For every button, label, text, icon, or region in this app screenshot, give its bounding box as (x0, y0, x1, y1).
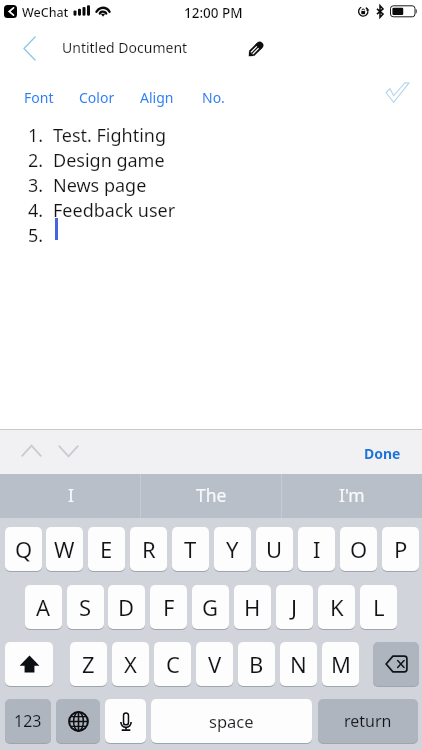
staticText: Q (15, 534, 33, 564)
staticText: WeChat (22, 4, 69, 21)
staticText: P (394, 534, 408, 564)
staticText: 1. (28, 123, 44, 148)
staticText: S (79, 592, 92, 622)
button[interactable]: Color (72, 82, 122, 113)
button[interactable]: Next field (53, 435, 83, 467)
staticText: O (350, 534, 368, 564)
button[interactable]: R (130, 527, 167, 571)
button[interactable]: F (150, 585, 187, 629)
staticText: I'm (339, 483, 365, 507)
staticText: N (290, 649, 307, 679)
staticText: Done (364, 444, 401, 463)
button[interactable]: Z (70, 642, 107, 686)
button[interactable]: A (25, 585, 62, 629)
staticText: Design game (53, 148, 165, 173)
staticText: F (163, 592, 175, 622)
button[interactable]: Align (133, 82, 181, 113)
staticText: The (196, 483, 227, 507)
staticText: I (68, 483, 74, 507)
button[interactable]: Backspace (373, 642, 419, 686)
staticText: Y (226, 534, 239, 564)
staticText: 5. (28, 223, 44, 248)
button[interactable]: space (151, 699, 312, 743)
staticText: U (266, 534, 283, 564)
staticText: 4. (28, 198, 44, 223)
staticText: V (208, 649, 222, 679)
staticText: Font (24, 88, 54, 107)
button[interactable]: Q (5, 527, 42, 571)
staticText: M (331, 649, 351, 679)
button[interactable]: T (172, 527, 209, 571)
button[interactable]: D (108, 585, 145, 629)
staticText: B (249, 649, 264, 679)
button[interactable]: I'm (281, 474, 422, 518)
staticText: return (344, 710, 392, 732)
staticText: L (373, 592, 385, 622)
staticText: A (36, 592, 51, 622)
button[interactable]: G (192, 585, 229, 629)
button[interactable]: U (256, 527, 293, 571)
button[interactable]: N (280, 642, 317, 686)
staticText: Feedback user (53, 198, 176, 223)
button[interactable]: Done (357, 438, 408, 469)
staticText: News page (53, 173, 147, 198)
staticText: 12:00 PM (184, 4, 243, 22)
staticText: W (54, 534, 75, 564)
staticText: G (202, 592, 219, 622)
staticText: No. (202, 88, 225, 107)
button[interactable]: M (322, 642, 359, 686)
button[interactable]: Done (382, 78, 413, 107)
staticText: Test. Fighting (53, 123, 167, 148)
button[interactable]: Edit (240, 32, 272, 64)
button[interactable]: W (46, 527, 83, 571)
button[interactable]: I (298, 527, 335, 571)
staticText: space (209, 710, 254, 732)
staticText: T (184, 534, 197, 564)
button[interactable]: Dictate (105, 699, 146, 743)
staticText: Align (140, 88, 174, 107)
button[interactable]: Y (214, 527, 251, 571)
button[interactable]: O (340, 527, 377, 571)
staticText: K (330, 592, 344, 622)
button[interactable]: E (88, 527, 125, 571)
button[interactable]: S (67, 585, 104, 629)
button[interactable]: Font (17, 82, 61, 113)
button[interactable]: J (276, 585, 313, 629)
staticText: 123 (14, 710, 42, 732)
button[interactable]: L (360, 585, 397, 629)
staticText: 3. (28, 173, 44, 198)
staticText: Color (79, 88, 115, 107)
staticText: X (124, 649, 137, 679)
button[interactable]: P (382, 527, 419, 571)
button[interactable]: K (318, 585, 355, 629)
button[interactable]: X (112, 642, 149, 686)
button[interactable]: No. (195, 82, 232, 113)
staticText: Untitled Document (62, 38, 188, 57)
button[interactable]: 123 (5, 699, 51, 743)
staticText: I (313, 534, 321, 564)
button[interactable]: Shift (5, 642, 53, 686)
staticText: R (142, 534, 156, 564)
staticText: Z (82, 649, 95, 679)
button[interactable]: The (141, 474, 282, 518)
button[interactable]: Switch keyboard (56, 699, 100, 743)
button[interactable]: C (154, 642, 191, 686)
button[interactable]: B (238, 642, 275, 686)
staticText: H (244, 592, 261, 622)
button[interactable]: Previous field (16, 435, 46, 467)
staticText: D (118, 592, 135, 622)
staticText: C (166, 649, 180, 679)
staticText: J (291, 592, 298, 622)
staticText: E (100, 534, 113, 564)
staticText: 2. (28, 148, 44, 173)
button[interactable]: I (0, 474, 141, 518)
button[interactable]: H (234, 585, 271, 629)
button[interactable]: V (196, 642, 233, 686)
button[interactable]: return (318, 699, 418, 743)
button[interactable]: Back (14, 33, 44, 63)
